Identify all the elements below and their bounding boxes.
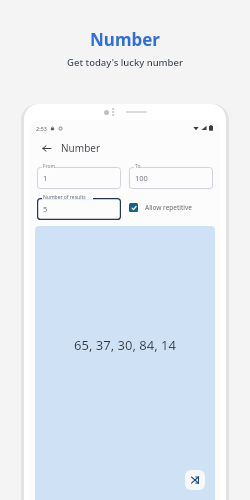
staticText: 65, 37, 30, 84, 14 bbox=[74, 336, 176, 354]
button[interactable]: Number of results bbox=[37, 194, 121, 220]
staticText: Get today's lucky number bbox=[67, 56, 183, 69]
button[interactable]: Back bbox=[38, 140, 54, 156]
staticText: Number bbox=[90, 28, 160, 51]
button[interactable]: From bbox=[37, 163, 121, 189]
staticText: Number bbox=[61, 141, 101, 155]
button[interactable]: Shuffle bbox=[185, 470, 205, 490]
button[interactable]: Allow repetitive bbox=[129, 203, 213, 212]
staticText: 2:53 bbox=[36, 125, 47, 132]
staticText: Number of results bbox=[43, 194, 86, 201]
staticText: 1 bbox=[43, 173, 48, 183]
staticText: To bbox=[135, 163, 141, 170]
staticText: Allow repetitive bbox=[145, 203, 193, 212]
staticText: From bbox=[43, 163, 56, 170]
button[interactable]: To bbox=[129, 163, 213, 189]
staticText: 5 bbox=[43, 204, 48, 214]
staticText: 100 bbox=[135, 173, 148, 183]
